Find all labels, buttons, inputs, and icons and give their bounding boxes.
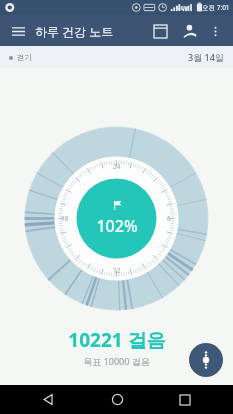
staticText: 18: [61, 214, 69, 223]
staticText: 102%: [96, 215, 138, 237]
button[interactable]: Recent apps: [165, 385, 205, 414]
staticText: 12: [113, 266, 121, 275]
button[interactable]: Add activity: [189, 343, 223, 377]
staticText: 걷기: [17, 53, 32, 62]
button[interactable]: Profile: [178, 19, 202, 43]
staticText: 3월 14일: [188, 51, 224, 63]
button[interactable]: 걷기: [0, 46, 233, 68]
staticText: 10221 걸음: [68, 327, 166, 353]
button[interactable]: Back: [28, 385, 68, 414]
staticText: 하루 건강 노트: [35, 23, 114, 39]
button[interactable]: Open navigation menu: [7, 20, 29, 42]
staticText: 98%: [177, 4, 189, 12]
button[interactable]: More options: [204, 20, 226, 42]
button[interactable]: Calendar: [148, 19, 172, 43]
staticText: 오전 7:01: [202, 3, 230, 12]
staticText: 24: [113, 162, 121, 171]
staticText: 6: [167, 214, 171, 223]
button[interactable]: Home: [97, 385, 137, 414]
staticText: 목표 10000 걸음: [83, 355, 150, 367]
